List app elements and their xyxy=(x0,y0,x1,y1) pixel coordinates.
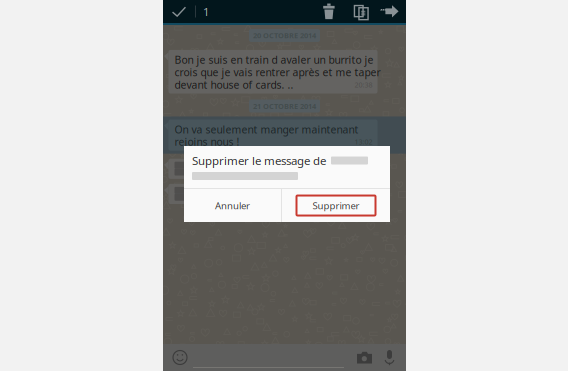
button[interactable]: Emoji xyxy=(167,344,193,371)
staticText: 21 OCTOBRE 2014 xyxy=(253,101,316,111)
staticText: Bon je suis en train d avaler un burrito… xyxy=(174,53,373,67)
staticText: crois que je vais rentrer après et me ta… xyxy=(174,65,380,79)
button[interactable]: Camera xyxy=(352,344,377,371)
staticText: Supprimer le message de xyxy=(192,153,326,168)
button[interactable]: Done xyxy=(163,0,195,23)
button[interactable]: Annuler xyxy=(184,189,281,222)
staticText: rejoins nous ! xyxy=(174,135,239,149)
button[interactable]: Supprimer xyxy=(282,189,390,222)
staticText: 20:38 xyxy=(354,80,372,89)
staticText: Supprimer xyxy=(312,199,359,212)
staticText: 1 xyxy=(203,4,209,19)
button[interactable]: Copy xyxy=(344,0,374,23)
staticText: 13:41 xyxy=(354,192,372,202)
staticText: 20 OCTOBRE 2014 xyxy=(253,30,316,40)
button[interactable]: Forward xyxy=(374,0,406,23)
staticText: On va seulement manger maintenant xyxy=(174,122,358,136)
button[interactable]: Voice message xyxy=(377,344,402,371)
staticText: Annuler xyxy=(215,199,250,212)
staticText: devant house of cards. .. xyxy=(174,78,293,91)
staticText: 13:02 xyxy=(354,137,372,147)
button[interactable]: Delete xyxy=(314,0,344,23)
